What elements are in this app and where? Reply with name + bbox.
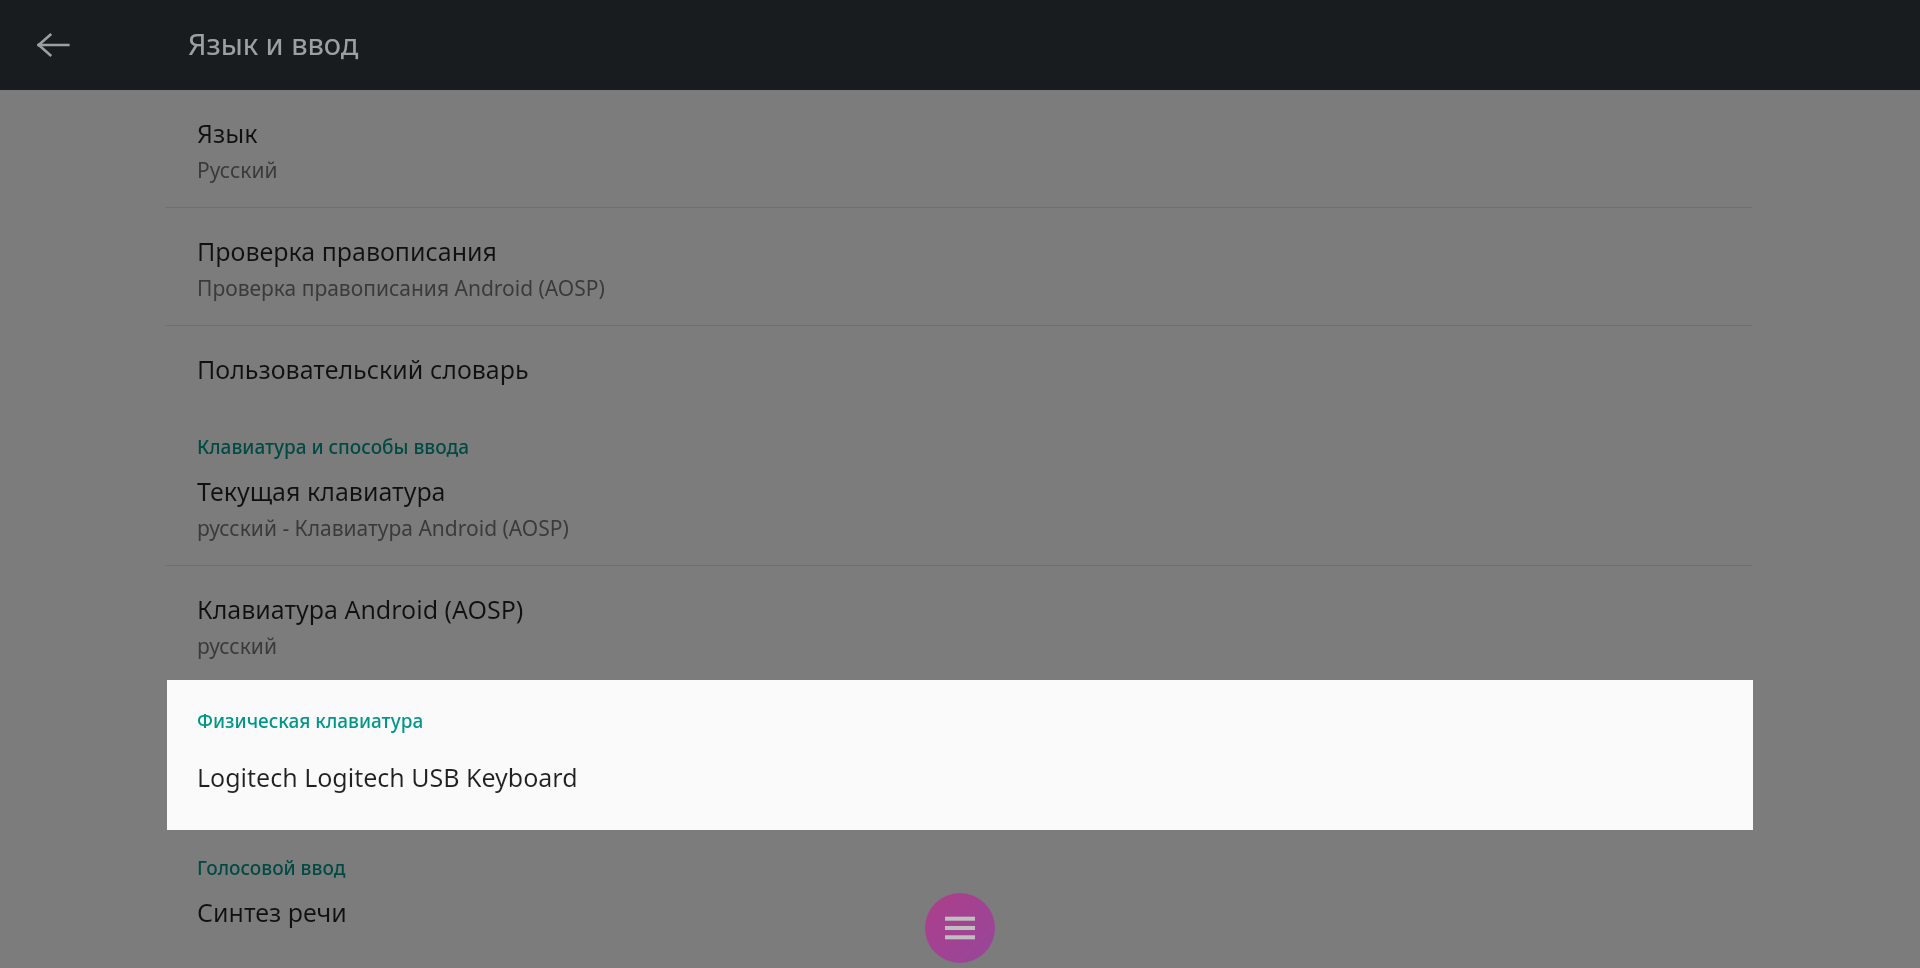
- staticText: Язык: [197, 116, 258, 150]
- staticText: Клавиатура Android (AOSP): [197, 592, 524, 626]
- staticText: Физическая клавиатура: [197, 708, 424, 734]
- staticText: Язык и ввод: [188, 24, 359, 63]
- staticText: Пользовательский словарь: [197, 352, 529, 386]
- button[interactable]: Back: [18, 10, 88, 80]
- staticText: русский - Клавиатура Android (AOSP): [197, 514, 569, 543]
- button[interactable]: Физическая клавиатура: [167, 680, 1753, 830]
- staticText: Проверка правописания Android (AOSP): [197, 274, 605, 303]
- staticText: Русский: [197, 156, 278, 185]
- staticText: Клавиатура и способы ввода: [197, 434, 469, 460]
- staticText: русский: [197, 632, 277, 661]
- staticText: Logitech Logitech USB Keyboard: [197, 760, 578, 794]
- staticText: Синтез речи: [197, 895, 347, 929]
- staticText: Голосовой ввод: [197, 855, 346, 881]
- staticText: Текущая клавиатура: [197, 474, 446, 508]
- button[interactable]: Пользовательский словарь: [0, 326, 1920, 412]
- button[interactable]: Текущая клавиатура: [0, 474, 1920, 565]
- button[interactable]: Проверка правописания: [0, 208, 1920, 325]
- button[interactable]: Menu: [925, 893, 995, 963]
- button[interactable]: Синтез речи: [0, 895, 1920, 955]
- button[interactable]: Язык: [0, 90, 1920, 207]
- button[interactable]: Клавиатура Android (AOSP): [0, 566, 1920, 683]
- staticText: Проверка правописания: [197, 234, 498, 268]
